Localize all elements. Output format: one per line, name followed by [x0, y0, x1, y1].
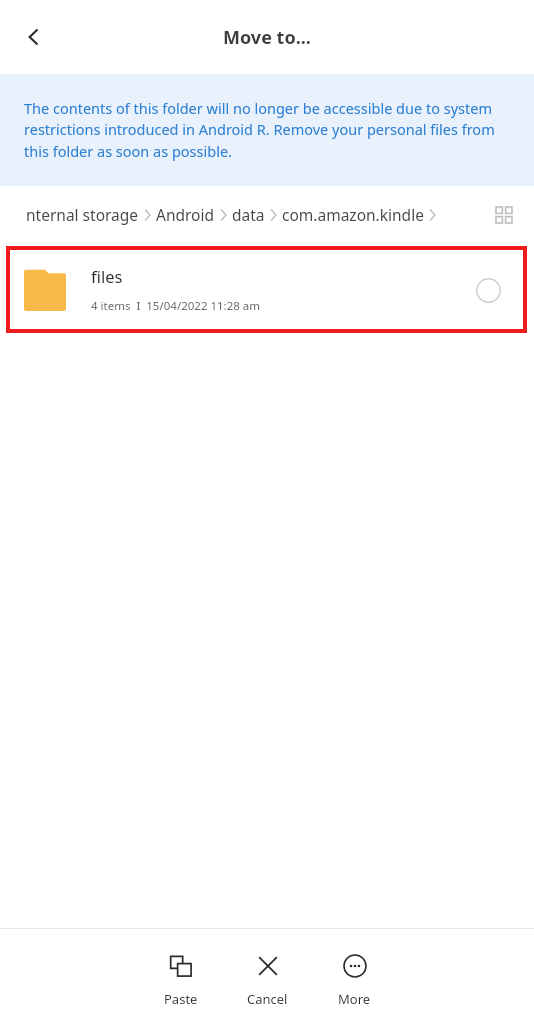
button[interactable]: More	[311, 943, 398, 1015]
button[interactable]: Select files	[471, 273, 505, 307]
staticText: Move to...	[223, 25, 311, 50]
button[interactable]: Cancel	[224, 943, 311, 1015]
staticText: Cancel	[247, 990, 288, 1008]
staticText: Paste	[164, 990, 198, 1008]
button[interactable]: nternal storage	[26, 204, 486, 225]
staticText: 4 items I 15/04/2022 11:28 am	[91, 298, 261, 314]
staticText: files	[91, 265, 123, 287]
staticText: com.amazon.kindle	[282, 204, 424, 225]
button[interactable]: Grid view	[486, 197, 522, 233]
staticText: The contents of this folder will no long…	[24, 98, 512, 162]
staticText: data	[232, 204, 265, 225]
staticText: Android	[156, 204, 215, 225]
button[interactable]: Back	[10, 13, 58, 61]
staticText: More	[338, 990, 371, 1008]
button[interactable]: Paste	[137, 943, 224, 1015]
staticText: nternal storage	[26, 204, 139, 225]
button[interactable]: files	[10, 250, 523, 329]
